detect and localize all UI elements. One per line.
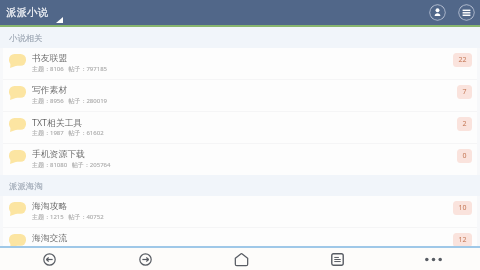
staticText: 主题：8106 帖子：797185 [32, 65, 108, 73]
button[interactable]: 写作素材 [3, 80, 477, 111]
button[interactable]: Menu [458, 4, 475, 21]
staticText: 写作素材 [32, 85, 68, 96]
button[interactable]: Back [0, 248, 96, 270]
staticText: 主题：8956 帖子：280019 [32, 97, 108, 105]
staticText: 7 [462, 87, 467, 97]
staticText: 手机资源下载 [32, 149, 85, 160]
staticText: 海淘交流 [32, 233, 68, 244]
staticText: 2 [462, 119, 467, 129]
staticText: 海淘攻略 [32, 201, 68, 212]
staticText: 0 [462, 151, 467, 161]
staticText: 小说相关 [9, 33, 43, 44]
staticText: 主题：1215 帖子：40752 [32, 213, 104, 221]
staticText: 书友联盟 [32, 53, 68, 64]
staticText: 22 [458, 55, 467, 65]
staticText: 主题：1987 帖子：61602 [32, 129, 104, 137]
button[interactable]: Forward [96, 248, 192, 270]
staticText: 10 [458, 203, 467, 213]
staticText: 主题：81080 帖子：205764 [32, 161, 111, 169]
button[interactable]: TXT相关工具 [3, 112, 477, 143]
button[interactable]: 手机资源下载 [3, 144, 477, 175]
staticText: 派派海淘 [9, 181, 43, 192]
button[interactable]: 海淘攻略 [3, 196, 477, 227]
button[interactable]: More options [384, 248, 480, 270]
staticText: 派派小说 [6, 6, 48, 19]
staticText: TXT相关工具 [32, 117, 83, 129]
staticText: 12 [458, 235, 467, 245]
button[interactable]: 海淘交流 [3, 228, 477, 246]
button[interactable]: Account [429, 4, 446, 21]
button[interactable]: 书友联盟 [3, 48, 477, 79]
button[interactable]: Recents [288, 248, 384, 270]
button[interactable]: Home [192, 248, 288, 270]
